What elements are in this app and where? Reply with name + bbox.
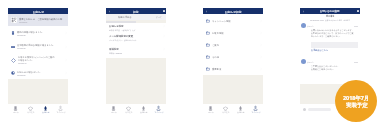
- button[interactable]: お客さま限定キャンペーンのご案内: [8, 53, 68, 67]
- button[interactable]: キャンペーン情報: [203, 15, 263, 27]
- staticText: すべて: [156, 16, 162, 18]
- staticText: 言語設定: [109, 48, 119, 51]
- staticText: 日本語 / English: [109, 52, 123, 54]
- button[interactable]: 最新の情報が届きました。: [8, 26, 68, 40]
- staticText: ホーム: [111, 111, 117, 113]
- button[interactable]: Menu: [355, 8, 360, 14]
- button[interactable]: Attach: [303, 108, 306, 111]
- staticText: サービス: [125, 111, 133, 113]
- button[interactable]: マイページ: [248, 104, 263, 115]
- button[interactable]: ご案内: [203, 39, 263, 51]
- staticText: その他: [212, 56, 260, 59]
- staticText: マイページ: [56, 111, 66, 113]
- staticText: お気軽にご相談ください。: [311, 68, 336, 71]
- staticText: メールマガジン・お知らせメール: [109, 39, 137, 41]
- staticText: 10:24: [354, 61, 358, 63]
- staticText: マイページ: [251, 111, 261, 113]
- staticText: 住宅取得の手続き情報が届きました。: [17, 44, 56, 47]
- button[interactable]: マイページ: [53, 104, 68, 115]
- button[interactable]: お取引情報: [203, 27, 263, 39]
- button[interactable]: 重要事項: [203, 63, 263, 75]
- button[interactable]: Back: [203, 8, 209, 14]
- button[interactable]: Menu: [161, 8, 166, 14]
- staticText: お知らせ: [237, 111, 245, 113]
- staticText: お知らせ: [33, 10, 44, 13]
- staticText: ご不明な点がございましたら、: [311, 65, 340, 68]
- staticText: 設定: [133, 10, 139, 13]
- staticText: 内いたします。ご確認ください。: [311, 35, 342, 38]
- staticText: 2018年7月: [343, 94, 370, 101]
- button[interactable]: 住宅取得の手続き情報が届きました。: [8, 40, 68, 53]
- staticText: 2018/05/20 10:24 お客さまサポート窓口 受付完了: [310, 19, 351, 21]
- staticText: サポート: [307, 61, 314, 63]
- button[interactable]: ホーム: [8, 104, 23, 115]
- button[interactable]: メール配信設定の変更: [106, 33, 166, 46]
- staticText: お知らせが届きました。: [17, 71, 43, 74]
- staticText: 2018/05/12: [18, 62, 27, 64]
- staticText: ホーム: [13, 111, 19, 113]
- staticText: サービス: [222, 111, 230, 113]
- staticText: お問い合わせいただきありがとうございます。: [311, 29, 354, 32]
- staticText: お知らせ: [42, 111, 50, 113]
- staticText: 2018/05/20: [17, 47, 26, 49]
- staticText: お客さま限定キャンペーンのご案内: [18, 56, 55, 59]
- staticText: 各種お手続き: [118, 16, 132, 19]
- button[interactable]: サービス: [218, 104, 233, 115]
- staticText: ホーム: [208, 111, 214, 113]
- button[interactable]: お知らせ設定: [106, 23, 166, 33]
- staticText: お問い合わせ履歴: [320, 10, 340, 13]
- staticText: お知らせ設定: [109, 25, 124, 28]
- staticText: 重要なお知らせ ご登録情報の確認のお願: [19, 18, 63, 21]
- button[interactable]: お知らせ: [38, 104, 53, 115]
- staticText: お取引情報: [212, 32, 260, 35]
- button[interactable]: 言語設定: [106, 46, 166, 58]
- staticText: 2018/06/01: [19, 21, 28, 23]
- staticText: お知らせ設定: [225, 10, 242, 13]
- staticText: 10:24: [354, 25, 358, 27]
- button[interactable]: サービス: [121, 104, 136, 115]
- button[interactable]: ホーム: [203, 104, 218, 115]
- staticText: が届きました。: [18, 59, 35, 62]
- staticText: お手続きの方法について、以下のページでご案: [311, 32, 354, 35]
- staticText: 実装予定: [346, 102, 368, 109]
- staticText: 重要事項: [212, 68, 260, 71]
- button[interactable]: マイページ: [151, 104, 166, 115]
- staticText: ご案内: [212, 44, 260, 47]
- button[interactable]: お知らせ: [136, 104, 151, 115]
- staticText: お知らせ: [140, 111, 148, 113]
- button[interactable]: Back: [106, 8, 112, 14]
- button[interactable]: お知らせ: [233, 104, 248, 115]
- staticText: 最新の情報が届きました。: [17, 31, 45, 34]
- button[interactable]: お知らせが届きました。: [8, 67, 68, 79]
- staticText: サポート: [307, 25, 314, 27]
- button[interactable]: その他: [203, 51, 263, 63]
- staticText: マイページ: [154, 111, 164, 113]
- button[interactable]: 2018年7月 実装予定: [335, 80, 377, 122]
- staticText: 受信する方法 ・ 通知タイミング: [109, 29, 136, 31]
- staticText: キャンペーン情報: [212, 20, 260, 23]
- staticText: サービス: [27, 111, 35, 113]
- button[interactable]: 重要なお知らせ ご登録情報の確認のお願: [8, 14, 68, 26]
- button[interactable]: サービス: [23, 104, 38, 115]
- staticText: 2018/05/02: [17, 74, 26, 76]
- staticText: 2018/05/28: [17, 34, 26, 36]
- button[interactable]: ホーム: [106, 104, 121, 115]
- staticText: 受付番号: [326, 15, 335, 18]
- button[interactable]: お手続きはこちら: [311, 49, 329, 52]
- button[interactable]: Back: [300, 8, 306, 14]
- staticText: メール配信設定の変更: [109, 35, 134, 38]
